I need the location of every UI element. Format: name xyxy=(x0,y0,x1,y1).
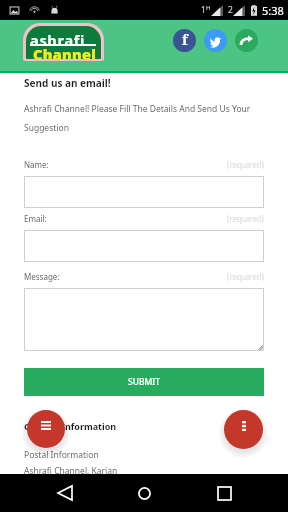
button[interactable]: Recent apps xyxy=(203,474,245,512)
button[interactable]: Twitter xyxy=(204,29,227,52)
button[interactable]: Back xyxy=(44,474,86,512)
staticText: ashrafi xyxy=(30,30,86,50)
staticText: Name: xyxy=(24,159,49,170)
button[interactable] xyxy=(24,288,264,351)
staticText: 1 xyxy=(201,4,206,15)
button[interactable]: Share xyxy=(235,29,258,52)
staticText: Contact Information xyxy=(24,420,117,432)
button[interactable]: More options xyxy=(224,410,263,449)
staticText: (required) xyxy=(227,159,264,170)
staticText: Postal Information xyxy=(24,449,99,461)
staticText: (required) xyxy=(227,213,264,224)
staticText: Email: xyxy=(24,213,47,224)
button[interactable] xyxy=(24,176,264,208)
staticText: 5:38 xyxy=(262,3,284,18)
staticText: Ashrafi Channel, Karian xyxy=(24,465,118,477)
staticText: f xyxy=(182,30,188,49)
staticText: Ashrafi Channel! Please Fill The Details… xyxy=(24,103,256,134)
staticText: (required) xyxy=(227,271,264,282)
staticText: 2 xyxy=(228,4,233,15)
staticText: H xyxy=(206,4,211,11)
button[interactable] xyxy=(24,230,264,262)
button[interactable]: ashrafi xyxy=(26,26,101,59)
staticText: Channel xyxy=(33,44,97,59)
staticText: Send us an email! xyxy=(24,76,111,90)
button[interactable]: Home xyxy=(123,474,165,512)
button[interactable]: Facebook xyxy=(173,29,196,52)
button[interactable]: SUBMIT xyxy=(24,368,264,396)
staticText: Message: xyxy=(24,271,60,282)
staticText: SUBMIT xyxy=(128,376,161,388)
button[interactable]: Menu xyxy=(27,410,65,448)
